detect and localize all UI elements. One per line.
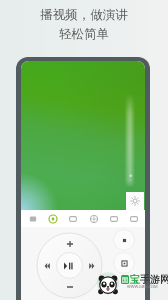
button[interactable]: Screen (64, 210, 81, 227)
staticText: 手游网 (140, 273, 168, 286)
staticText: 宝 (130, 273, 140, 286)
button[interactable]: Record (113, 252, 135, 274)
button[interactable]: Globe (85, 210, 102, 227)
button[interactable]: Play pause (57, 253, 83, 279)
staticText: WWW.GBSJ.COM (127, 284, 158, 289)
button[interactable]: Focus (126, 192, 144, 210)
button[interactable]: Previous (42, 261, 52, 271)
button[interactable]: Layout (24, 210, 41, 227)
staticText: 播视频，做演讲 (40, 7, 128, 23)
button[interactable]: Volume down (65, 282, 75, 292)
button[interactable]: Record (44, 210, 61, 227)
button[interactable]: Next (87, 261, 97, 271)
button[interactable]: Card (105, 210, 122, 227)
button[interactable]: Volume up (65, 239, 75, 249)
staticText: 国 (122, 276, 128, 284)
button[interactable]: Stop (113, 229, 135, 251)
button[interactable]: More (125, 210, 142, 227)
staticText: 轻松简单 (59, 26, 109, 42)
